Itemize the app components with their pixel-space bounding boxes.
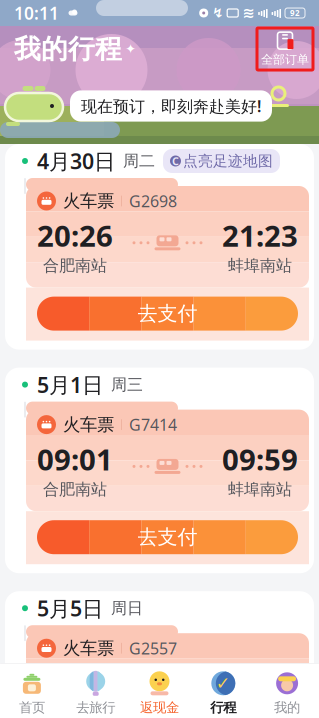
- staticText: 蚌埠南站: [228, 703, 292, 718]
- staticText: ✓: [216, 673, 231, 693]
- staticText: 去支付: [137, 301, 197, 326]
- staticText: 首页: [19, 699, 45, 716]
- button[interactable]: 去支付: [37, 297, 298, 331]
- staticText: 20:26: [37, 216, 113, 255]
- staticText: G2557: [129, 638, 177, 659]
- staticText: 蚌埠南站: [228, 256, 292, 276]
- staticText: 09:59: [222, 440, 298, 479]
- button[interactable]: 首页: [0, 670, 64, 716]
- staticText: 合肥南站: [43, 480, 107, 499]
- staticText: 92: [290, 8, 300, 18]
- button[interactable]: 5月5日: [5, 591, 314, 718]
- staticText: 点亮足迹地图: [183, 152, 273, 170]
- staticText: 5月1日: [37, 370, 103, 399]
- staticText: 我的行程: [14, 33, 122, 65]
- staticText: 返现金: [140, 699, 179, 716]
- button[interactable]: C: [163, 149, 280, 173]
- button[interactable]: 去旅行: [64, 670, 128, 716]
- staticText: 全部订单: [261, 52, 309, 67]
- button[interactable]: 5月1日: [5, 368, 314, 573]
- button[interactable]: 去支付: [37, 520, 298, 554]
- staticText: 去支付: [137, 525, 197, 549]
- staticText: 07:40: [37, 663, 113, 702]
- staticText: 火车票: [63, 414, 114, 435]
- button[interactable]: 全部订单: [257, 28, 313, 70]
- staticText: 蚌埠南站: [228, 480, 292, 499]
- staticText: ≋: [242, 5, 254, 21]
- staticText: 09:01: [37, 440, 113, 479]
- button[interactable]: 我的: [255, 670, 319, 716]
- button[interactable]: 返现金: [128, 670, 191, 716]
- staticText: 行程: [210, 699, 236, 716]
- staticText: G7414: [129, 414, 177, 435]
- staticText: ↯: [212, 5, 223, 20]
- staticText: 火车票: [63, 638, 114, 659]
- staticText: 周二: [123, 151, 155, 171]
- staticText: 去旅行: [76, 699, 115, 716]
- staticText: 5月5日: [37, 594, 103, 622]
- staticText: 4月30日: [37, 147, 115, 175]
- button[interactable]: 4月30日: [5, 144, 314, 350]
- staticText: 08:38: [222, 663, 298, 702]
- staticText: C: [172, 154, 179, 168]
- staticText: 我的: [274, 699, 300, 716]
- staticText: 合肥南站: [43, 703, 107, 718]
- staticText: 21:23: [222, 216, 298, 255]
- staticText: ✦: [125, 41, 136, 56]
- staticText: G2698: [129, 190, 177, 212]
- staticText: 10:11: [14, 1, 59, 24]
- staticText: 周日: [111, 598, 143, 618]
- staticText: 周三: [111, 375, 143, 394]
- staticText: 合肥南站: [43, 256, 107, 276]
- staticText: 现在预订，即刻奔赴美好!: [81, 95, 261, 117]
- staticText: 火车票: [63, 190, 114, 212]
- button[interactable]: ✓: [191, 670, 255, 716]
